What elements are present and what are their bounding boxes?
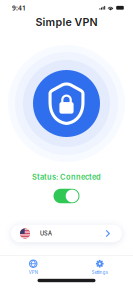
button[interactable]: Settings	[67, 256, 133, 279]
staticText: 9:41	[12, 3, 26, 12]
staticText: Settings	[92, 270, 108, 275]
button[interactable]: VPN connection toggle	[51, 186, 81, 205]
staticText: Status: Connected	[32, 172, 101, 181]
button[interactable]: USA	[11, 225, 122, 242]
staticText: Simple VPN	[35, 15, 97, 28]
button[interactable]: VPN	[0, 256, 66, 279]
staticText: USA	[40, 230, 52, 237]
staticText: VPN	[29, 270, 38, 275]
